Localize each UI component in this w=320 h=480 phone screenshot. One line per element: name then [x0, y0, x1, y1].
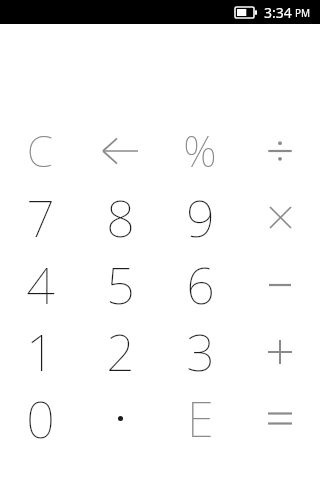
staticText: 5 [106, 251, 135, 318]
staticText: 7 [26, 184, 55, 251]
button[interactable]: 8 [80, 184, 160, 251]
staticText: PM [295, 6, 311, 20]
staticText: 4 [26, 251, 55, 318]
staticText: 8 [106, 184, 135, 251]
staticText: 0 [26, 385, 55, 452]
staticText: 3 [186, 318, 215, 385]
staticText: 6 [186, 251, 215, 318]
staticText: 3:34 [264, 3, 292, 22]
button[interactable]: 3 [160, 318, 240, 385]
button[interactable]: % [160, 117, 240, 184]
button[interactable]: Divide [240, 117, 320, 184]
button[interactable]: 4 [0, 251, 80, 318]
button[interactable]: 5 [80, 251, 160, 318]
staticText: E [187, 386, 214, 451]
button[interactable]: E [160, 385, 240, 452]
button[interactable]: 2 [80, 318, 160, 385]
staticText: 2 [106, 318, 135, 385]
button[interactable]: 9 [160, 184, 240, 251]
button[interactable]: 0 [0, 385, 80, 452]
button[interactable]: 6 [160, 251, 240, 318]
staticText: 9 [186, 184, 215, 251]
staticText: C [27, 122, 53, 179]
staticText: 1 [26, 318, 55, 385]
button[interactable]: C [0, 117, 80, 184]
button[interactable]: Plus [240, 318, 320, 385]
button[interactable]: Minus [240, 251, 320, 318]
button[interactable]: Equals [240, 385, 320, 452]
button[interactable]: 7 [0, 184, 80, 251]
staticText: % [183, 122, 217, 179]
button[interactable]: 1 [0, 318, 80, 385]
button[interactable]: Backspace [80, 117, 160, 184]
button[interactable]: Multiply [240, 184, 320, 251]
button[interactable]: Decimal point [80, 385, 160, 452]
